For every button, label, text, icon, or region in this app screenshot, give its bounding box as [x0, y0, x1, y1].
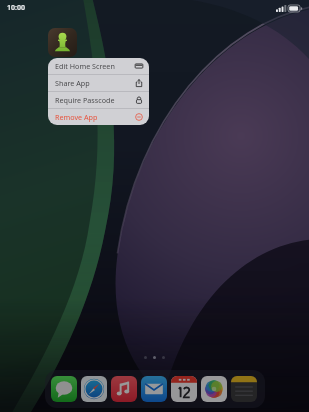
button[interactable]: Notes	[231, 376, 257, 402]
button[interactable]: Remove App	[48, 109, 149, 125]
button[interactable]: Calendar	[171, 376, 197, 402]
button[interactable]: Share App	[48, 75, 149, 91]
button[interactable]: Photos	[201, 376, 227, 402]
button[interactable]: Messages	[51, 376, 77, 402]
staticText: 10:00	[7, 3, 25, 13]
button[interactable]: Edit Home Screen	[48, 58, 149, 74]
staticText: Edit Home Screen	[55, 61, 115, 71]
button[interactable]: Chess app	[48, 28, 77, 57]
staticText: Share App	[55, 78, 90, 88]
button[interactable]: Music	[111, 376, 137, 402]
button[interactable]: Require Passcode	[48, 92, 149, 108]
button[interactable]: Mail	[141, 376, 167, 402]
staticText: Remove App	[55, 112, 98, 122]
staticText: Require Passcode	[55, 95, 115, 105]
button[interactable]: Safari	[81, 376, 107, 402]
